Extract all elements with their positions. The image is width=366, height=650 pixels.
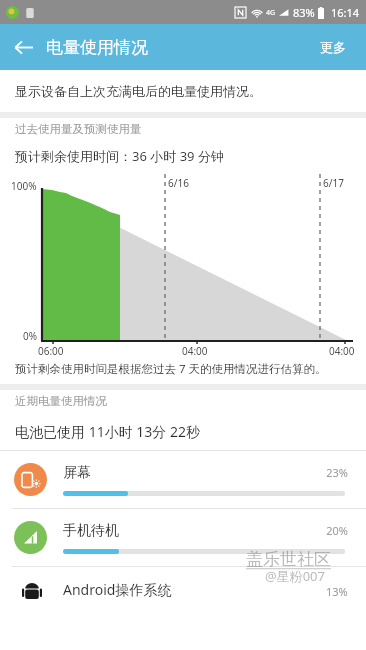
staticText: 4G bbox=[266, 8, 276, 18]
staticText: 预计剩余使用时间：36 小时 39 分钟 bbox=[15, 147, 224, 165]
staticText: 盖乐世社区 bbox=[246, 549, 331, 570]
staticText: 04:00 bbox=[182, 344, 208, 358]
staticText: 屏幕 bbox=[63, 464, 91, 482]
staticText: 6/17 bbox=[323, 176, 344, 190]
staticText: 预计剩余使用时间是根据您过去 7 天的使用情况进行估算的。 bbox=[15, 361, 327, 377]
staticText: 20% bbox=[326, 523, 348, 538]
staticText: 23% bbox=[326, 465, 348, 480]
staticText: 83% bbox=[293, 5, 315, 20]
staticText: 13% bbox=[326, 584, 348, 599]
staticText: 16:14 bbox=[331, 5, 360, 20]
staticText: 过去使用量及预测使用量 bbox=[15, 122, 142, 136]
staticText: 电池已使用 11小时 13分 22秒 bbox=[15, 422, 200, 441]
staticText: 06:00 bbox=[38, 344, 64, 358]
staticText: 更多 bbox=[320, 39, 346, 55]
staticText: 近期电量使用情况 bbox=[15, 394, 107, 408]
staticText: 100% bbox=[11, 179, 37, 193]
staticText: 电量使用情况 bbox=[46, 37, 148, 58]
staticText: @星粉007 bbox=[265, 567, 325, 585]
button[interactable]: 手机待机 bbox=[0, 509, 366, 566]
button[interactable]: 更多 bbox=[300, 24, 366, 70]
staticText: 04:00 bbox=[329, 344, 355, 358]
button[interactable]: Android操作系统 bbox=[0, 567, 366, 607]
staticText: 手机待机 bbox=[63, 522, 119, 540]
staticText: 显示设备自上次充满电后的电量使用情况。 bbox=[15, 83, 262, 99]
staticText: Android操作系统 bbox=[63, 580, 172, 599]
button[interactable]: Back bbox=[0, 24, 46, 70]
button[interactable]: 屏幕 bbox=[0, 451, 366, 508]
staticText: 0% bbox=[23, 329, 38, 343]
staticText: 6/16 bbox=[168, 176, 189, 190]
